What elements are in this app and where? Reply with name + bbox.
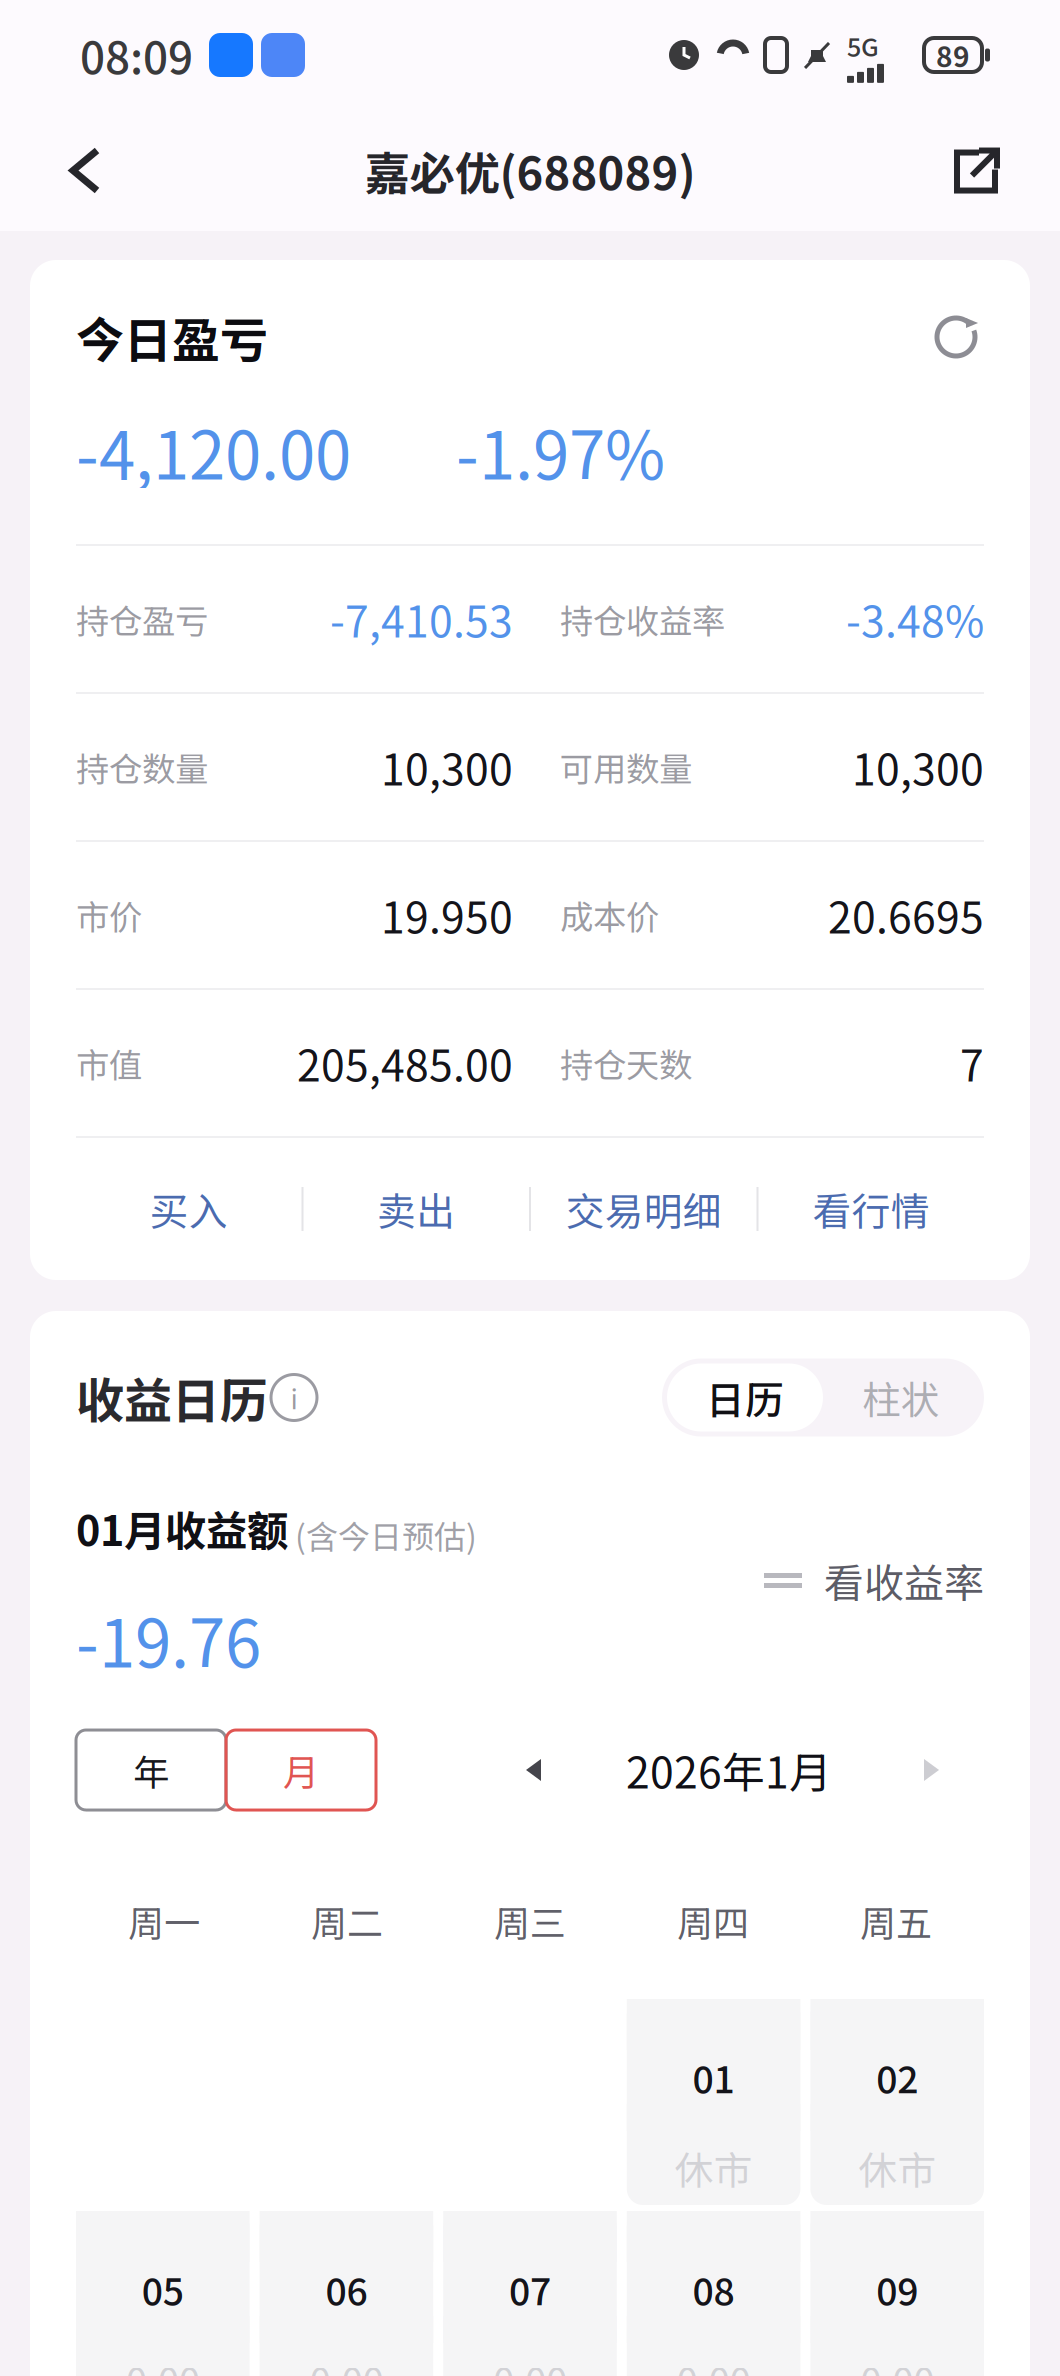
staticText: 205,485.00 xyxy=(297,1032,513,1094)
staticText: 5G xyxy=(847,27,879,64)
staticText: -1.97% xyxy=(456,404,665,498)
staticText: (含今日预估) xyxy=(295,1512,477,1558)
staticText: 休市 xyxy=(675,2140,753,2196)
staticText: -4,120.00 xyxy=(76,404,351,498)
staticText: 0.00 xyxy=(493,2352,567,2376)
button[interactable]: 返回 xyxy=(45,130,125,210)
staticText: 月 xyxy=(283,1744,319,1796)
button[interactable]: 下一月 xyxy=(923,1755,940,1785)
staticText: 嘉必优(688089) xyxy=(364,138,695,203)
button[interactable]: 年 xyxy=(76,1730,226,1810)
staticText: 2026年1月 xyxy=(626,1739,832,1801)
staticText: 交易明细 xyxy=(566,1181,722,1237)
staticText: 看收益率 xyxy=(824,1551,984,1609)
button[interactable]: 日历 xyxy=(667,1363,823,1431)
staticText: 市值 xyxy=(76,1039,142,1087)
button[interactable]: 卖出 xyxy=(303,1138,529,1280)
button[interactable]: 06 xyxy=(260,2211,433,2376)
staticText: 0.00 xyxy=(126,2352,200,2376)
staticText: 0.00 xyxy=(677,2352,751,2376)
button[interactable]: 09 xyxy=(810,2211,984,2376)
staticText: 89 xyxy=(936,35,970,75)
staticText: 周二 xyxy=(311,1895,383,1947)
staticText: 09 xyxy=(876,2262,918,2316)
button[interactable]: 分享 xyxy=(935,130,1015,210)
staticText: 收益日历 xyxy=(76,1363,268,1432)
button[interactable]: 刷新 xyxy=(928,309,984,365)
staticText: 7 xyxy=(960,1032,984,1094)
button[interactable]: 月 xyxy=(226,1730,376,1810)
staticText: 10,300 xyxy=(381,736,513,798)
staticText: i xyxy=(290,1378,297,1417)
staticText: -7,410.53 xyxy=(330,588,513,650)
staticText: 01 xyxy=(693,2050,735,2104)
staticText: 0.00 xyxy=(309,2352,383,2376)
staticText: 持仓天数 xyxy=(560,1039,692,1087)
staticText: 休市 xyxy=(858,2140,936,2196)
staticText: 卖出 xyxy=(377,1181,455,1237)
staticText: 02 xyxy=(876,2050,918,2104)
staticText: 柱状 xyxy=(862,1369,940,1425)
staticText: 可用数量 xyxy=(560,743,692,791)
button[interactable]: 07 xyxy=(443,2211,617,2376)
staticText: 20.6695 xyxy=(828,884,984,946)
staticText: 05 xyxy=(142,2262,184,2316)
button[interactable]: 08 xyxy=(627,2211,800,2376)
staticText: 市价 xyxy=(76,891,142,939)
button[interactable]: 柱状 xyxy=(823,1363,979,1431)
staticText: 看行情 xyxy=(813,1181,930,1237)
button[interactable]: 交易明细 xyxy=(531,1138,756,1280)
button[interactable]: 05 xyxy=(76,2211,250,2376)
staticText: 买入 xyxy=(150,1181,228,1237)
staticText: 周三 xyxy=(494,1895,566,1947)
button[interactable]: 买入 xyxy=(76,1138,301,1280)
staticText: 0.00 xyxy=(860,2352,934,2376)
staticText: 19.950 xyxy=(381,884,513,946)
staticText: 08:09 xyxy=(80,23,193,87)
staticText: 成本价 xyxy=(560,891,659,939)
button[interactable]: 02 xyxy=(810,1999,984,2205)
staticText: 08 xyxy=(693,2262,735,2316)
staticText: -19.76 xyxy=(76,1592,261,1686)
staticText: 周四 xyxy=(677,1895,749,1947)
staticText: -3.48% xyxy=(846,588,984,650)
button[interactable]: 看收益率 xyxy=(762,1551,984,1617)
staticText: 年 xyxy=(133,1744,169,1796)
staticText: 07 xyxy=(509,2262,551,2316)
staticText: 10,300 xyxy=(852,736,984,798)
staticText: 01月收益额 xyxy=(76,1498,288,1558)
staticText: 日历 xyxy=(706,1369,784,1425)
staticText: 今日盈亏 xyxy=(76,302,268,372)
button[interactable]: 看行情 xyxy=(758,1138,984,1280)
button[interactable]: 01 xyxy=(627,1999,800,2205)
staticText: 周五 xyxy=(860,1895,932,1947)
staticText: 持仓盈亏 xyxy=(76,595,208,643)
staticText: 周一 xyxy=(128,1895,200,1947)
staticText: 持仓数量 xyxy=(76,743,208,791)
button[interactable]: 上一月 xyxy=(525,1755,542,1785)
staticText: 持仓收益率 xyxy=(560,595,725,643)
staticText: 06 xyxy=(325,2262,367,2316)
